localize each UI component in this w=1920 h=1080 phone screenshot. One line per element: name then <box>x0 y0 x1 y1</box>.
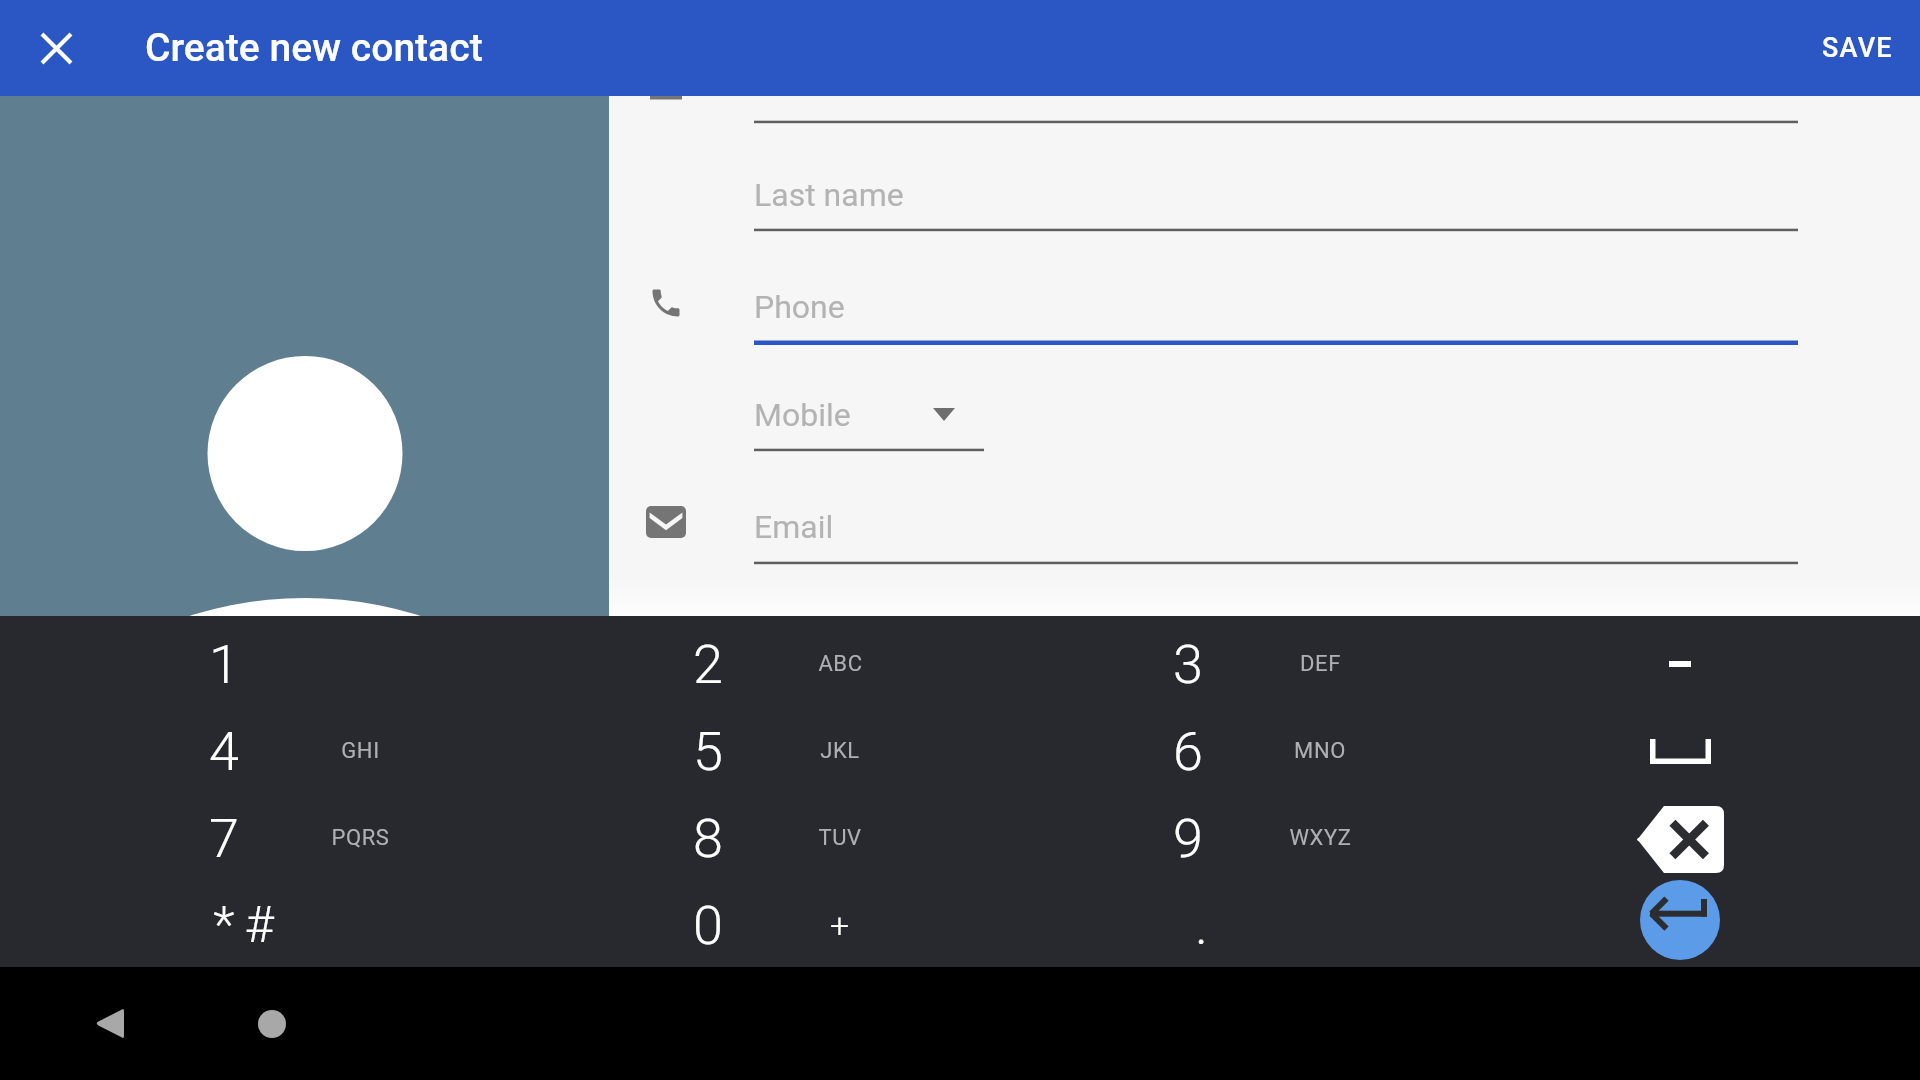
staticText: 5 <box>693 720 723 783</box>
button[interactable]: 8 <box>480 794 960 882</box>
staticText: 4 <box>209 720 239 783</box>
button[interactable]: Space <box>1440 707 1920 795</box>
button[interactable]: . <box>960 881 1440 969</box>
staticText: 1 <box>209 633 239 696</box>
staticText: 9 <box>1173 807 1203 870</box>
staticText: Last name <box>754 176 904 214</box>
button[interactable]: Enter <box>1640 880 1720 960</box>
button[interactable]: 9 <box>960 794 1440 882</box>
staticText: 0 <box>693 894 723 957</box>
staticText: DEF <box>1300 651 1341 677</box>
staticText: Mobile <box>754 396 851 434</box>
button[interactable]: 2 <box>480 620 960 708</box>
button[interactable]: Dash <box>1440 620 1920 708</box>
staticText: Email <box>754 508 834 546</box>
staticText: 6 <box>1173 720 1203 783</box>
staticText: MNO <box>1294 738 1346 764</box>
staticText: * # <box>213 896 274 955</box>
button[interactable]: Email <box>754 478 1798 576</box>
staticText: ABC <box>818 651 863 677</box>
button[interactable]: 7 <box>0 794 480 882</box>
button[interactable]: Back <box>54 967 166 1080</box>
button[interactable]: Backspace <box>1440 794 1920 882</box>
button[interactable]: 0 <box>480 881 960 969</box>
staticText: + <box>830 905 850 945</box>
staticText: Phone <box>754 288 845 326</box>
button[interactable]: 5 <box>480 707 960 795</box>
staticText: SAVE <box>1822 32 1893 64</box>
button[interactable]: Close <box>24 16 88 80</box>
button[interactable]: * # <box>0 881 480 969</box>
staticText: 2 <box>693 633 723 696</box>
button[interactable]: Phone type <box>920 390 968 438</box>
staticText: JKL <box>820 738 860 764</box>
staticText: GHI <box>341 738 380 764</box>
staticText: PQRS <box>331 825 390 851</box>
staticText: 3 <box>1173 633 1203 696</box>
button[interactable]: Phone <box>754 258 1798 356</box>
staticText: . <box>1195 894 1208 957</box>
button[interactable]: 3 <box>960 620 1440 708</box>
button[interactable]: Add contact photo <box>0 96 609 616</box>
button[interactable]: 4 <box>0 707 480 795</box>
button[interactable]: Last name <box>754 146 1798 244</box>
staticText: TUV <box>818 825 862 851</box>
staticText: Create new contact <box>145 25 483 71</box>
button[interactable]: 6 <box>960 707 1440 795</box>
button[interactable]: 1 <box>0 620 480 708</box>
button[interactable]: Mobile <box>754 366 984 464</box>
button[interactable]: Home <box>216 967 328 1080</box>
staticText: WXYZ <box>1289 825 1352 851</box>
staticText: 7 <box>209 807 239 870</box>
staticText: 8 <box>693 807 723 870</box>
button[interactable]: SAVE <box>1804 14 1910 82</box>
